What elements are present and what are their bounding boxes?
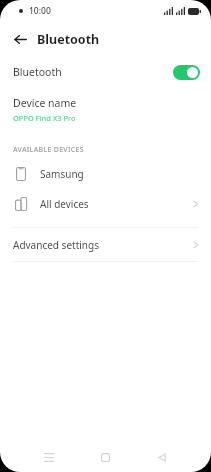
staticText: Bluetooth bbox=[13, 65, 62, 79]
staticText: OPPO Find X3 Pro bbox=[13, 113, 76, 123]
button[interactable]: Samsung bbox=[0, 159, 211, 189]
button[interactable]: Recent apps bbox=[36, 444, 62, 470]
button[interactable]: Bluetooth bbox=[0, 56, 211, 88]
staticText: Samsung bbox=[40, 167, 84, 181]
staticText: Device name bbox=[13, 96, 77, 110]
button[interactable]: Advanced settings bbox=[0, 228, 211, 261]
button[interactable]: Back bbox=[149, 444, 175, 470]
button[interactable]: Device name bbox=[0, 88, 211, 127]
button[interactable]: Home bbox=[92, 444, 118, 470]
staticText: All devices bbox=[40, 197, 89, 211]
staticText: 10:00 bbox=[29, 5, 51, 17]
staticText: Advanced settings bbox=[13, 238, 99, 252]
button[interactable]: Bluetooth on bbox=[173, 65, 200, 80]
button[interactable]: All devices bbox=[0, 189, 211, 219]
staticText: Bluetooth bbox=[37, 31, 100, 48]
button[interactable]: Back bbox=[7, 26, 33, 52]
staticText: AVAILABLE DEVICES bbox=[13, 145, 84, 155]
